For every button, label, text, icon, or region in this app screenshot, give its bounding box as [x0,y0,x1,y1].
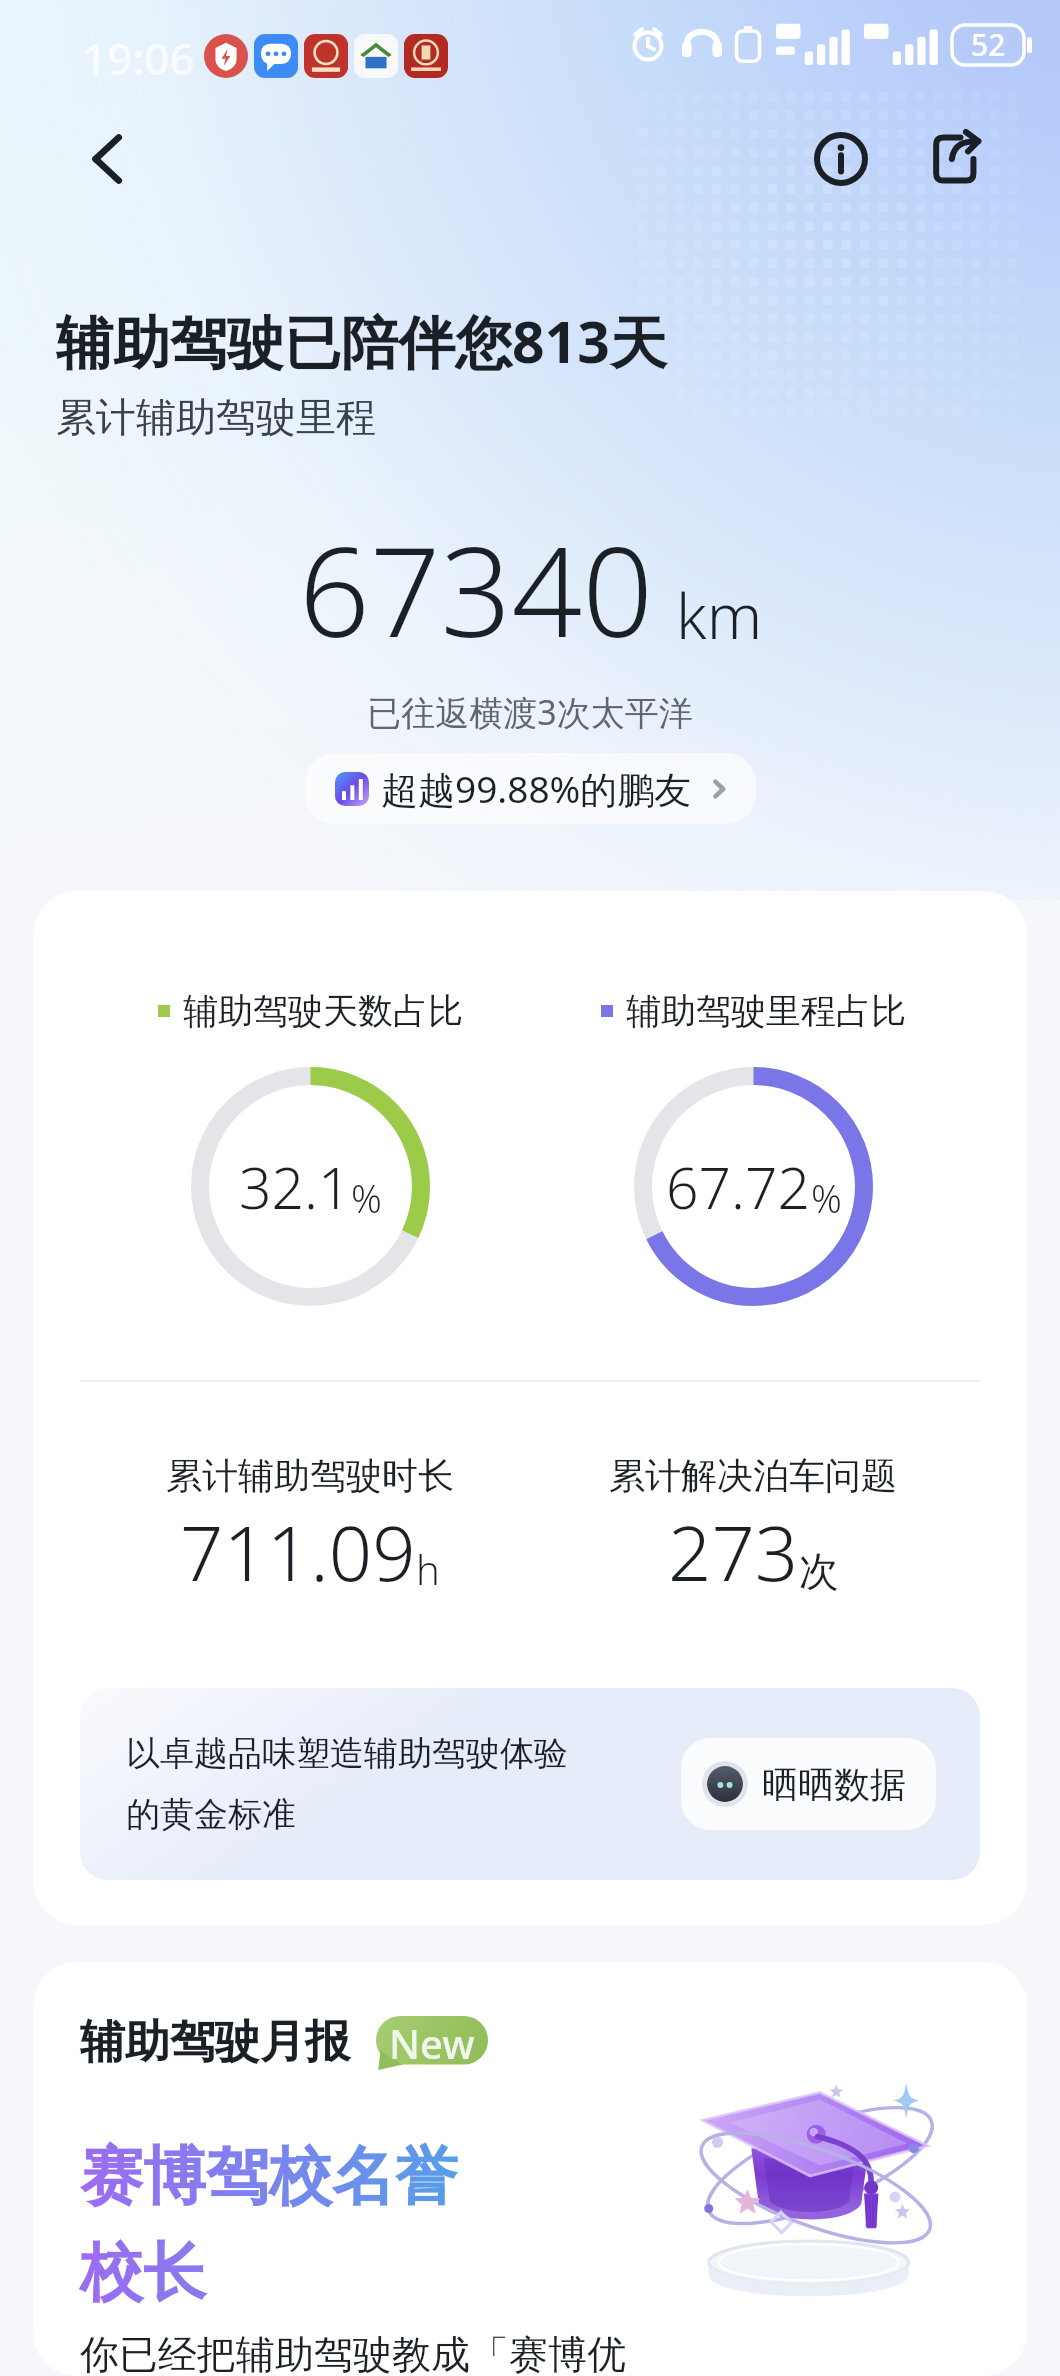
staticText: 273 [668,1500,799,1604]
staticText: 你已经把辅助驾驶教成「赛博优 [80,2330,626,2376]
staticText: 已往返横渡3次太平洋 [0,689,1060,735]
button[interactable]: 晒晒数据 [681,1738,936,1830]
staticText: 累计解决泊车问题 [609,1453,897,1498]
staticText: 52 [971,24,1006,65]
staticText: 晒晒数据 [762,1762,906,1807]
staticText: 67.72 [666,1148,811,1226]
staticText: h [416,1542,440,1596]
button[interactable]: Share [914,119,994,199]
staticText: 辅助驾驶里程占比 [626,989,906,1033]
staticText: 赛博驾校名誉 校长 [80,2137,458,2312]
staticText: 以卓越品味塑造辅助驾驶体验 的黄金标准 [126,1732,568,1836]
staticText: 超越99.88%的鹏友 [381,763,692,814]
staticText: 辅助驾驶已陪伴您813天 [56,302,667,380]
staticText: 19:06 [82,28,195,88]
staticText: 辅助驾驶月报 [80,2014,350,2071]
staticText: New [389,2016,475,2065]
button[interactable]: Info [801,119,881,199]
button[interactable]: 超越99.88%的鹏友 [305,753,756,824]
staticText: 32.1 [239,1148,351,1226]
staticText: 累计辅助驾驶里程 [56,392,376,442]
staticText: 67340 [299,504,654,673]
staticText: % [351,1172,382,1224]
staticText: km [676,573,762,657]
staticText: 辅助驾驶天数占比 [183,989,463,1033]
button[interactable]: Back [70,121,146,197]
staticText: % [811,1172,842,1224]
staticText: 累计辅助驾驶时长 [166,1453,454,1498]
staticText: 711.09 [180,1500,416,1604]
staticText: 次 [799,1546,839,1596]
